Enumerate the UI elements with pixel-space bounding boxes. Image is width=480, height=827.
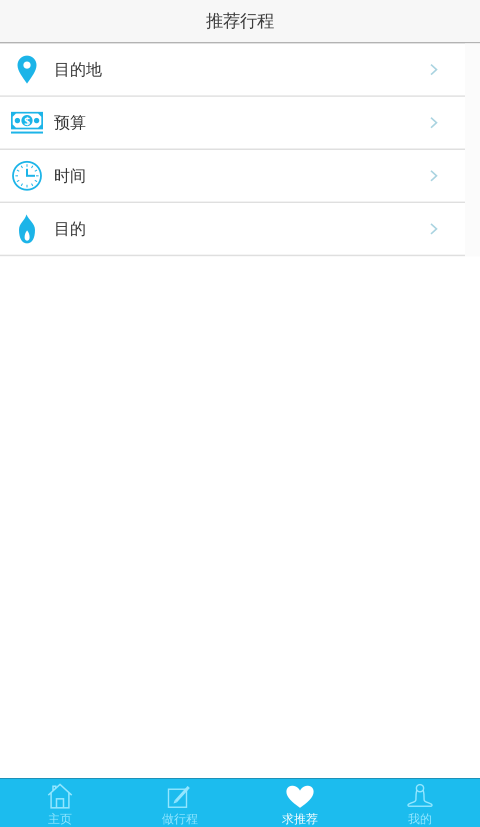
button[interactable]: 时间 (0, 150, 480, 202)
staticText: 求推荐 (282, 812, 318, 826)
button[interactable]: $ (0, 97, 480, 148)
button[interactable]: 目的地 (0, 44, 480, 95)
staticText: 主页 (48, 812, 72, 826)
staticText: 做行程 (162, 812, 198, 826)
button[interactable]: 目的 (0, 203, 480, 255)
staticText: 推荐行程 (206, 10, 274, 32)
button[interactable]: 求推荐 (240, 778, 360, 827)
button[interactable]: 我的 (360, 778, 480, 827)
staticText: 我的 (408, 812, 432, 826)
staticText: 预算 (54, 113, 86, 133)
staticText: $ (24, 113, 30, 128)
staticText: 时间 (54, 166, 86, 186)
staticText: 目的 (54, 219, 86, 239)
button[interactable]: 做行程 (120, 778, 240, 827)
staticText: 目的地 (54, 60, 102, 79)
button[interactable]: 主页 (0, 778, 120, 827)
